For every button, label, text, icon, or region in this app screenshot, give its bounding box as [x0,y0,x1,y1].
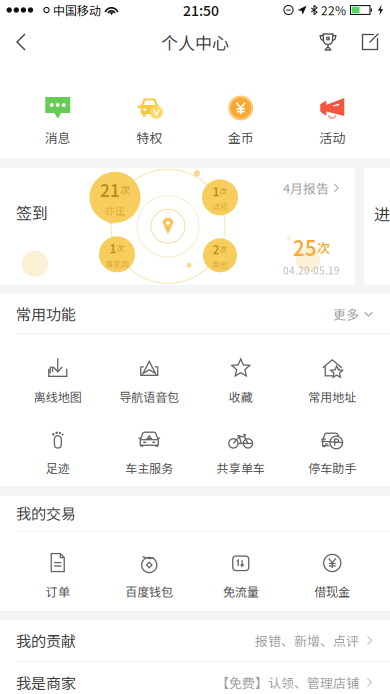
button[interactable]: 车主服务 [103,425,195,479]
staticText: 特权 [136,128,162,147]
staticText: 我的贡献 [16,630,76,651]
staticText: 21 [100,177,120,202]
staticText: 更多 [333,304,359,323]
staticText: 21:50 [183,0,219,20]
button[interactable]: 返回 [0,20,44,64]
button[interactable]: 足迹 [12,425,103,479]
staticText: 其他 [212,259,228,270]
button[interactable]: 更多 [333,296,374,331]
staticText: 04.20-05.19 [283,263,340,277]
staticText: 共享单车 [217,459,265,477]
staticText: 停车助手 [308,459,356,477]
staticText: 百度钱包 [125,583,173,600]
button[interactable]: 我是商家 [0,662,390,694]
button[interactable]: 常用地址 [286,354,378,407]
button[interactable]: 编辑 [350,20,390,64]
staticText: 借现金 [314,583,350,600]
staticText: 活动 [319,128,345,147]
staticText: 常用地址 [308,388,356,405]
button[interactable]: 消息 [12,95,103,147]
staticText: 足迹 [46,459,70,477]
staticText: 次 [219,243,227,255]
staticText: 我是商家 [16,672,76,693]
staticText: 订单 [46,583,70,600]
staticText: 签到 [16,201,48,224]
staticText: 个人中心 [161,30,229,54]
staticText: 1 [109,239,116,257]
staticText: 消息 [45,128,71,147]
staticText: 车主服务 [125,459,173,477]
staticText: 次 [219,185,227,197]
staticText: 25 [293,233,317,262]
staticText: 导航语音包 [119,388,179,405]
staticText: 1 [212,182,219,200]
staticText: 我的交易 [16,502,76,524]
button[interactable]: 我的贡献 [0,620,390,661]
staticText: 报错、新增、点评 [255,631,359,650]
staticText: 洋桥 [212,201,228,212]
staticText: 潘家园 [105,258,129,269]
button[interactable]: 共享单车 [195,425,286,479]
button[interactable]: 停车助手 [286,425,378,479]
button[interactable]: 金币 [195,95,286,147]
button[interactable]: 免流量 [195,549,286,602]
staticText: 4月报告 [283,178,329,197]
staticText: 【免费】认领、管理店铺 [216,673,359,692]
button[interactable]: 特权 [103,95,195,147]
button[interactable]: 借现金 [286,549,378,602]
staticText: 中国移动 [53,1,101,19]
button[interactable]: 导航语音包 [103,354,195,407]
button[interactable]: 荣誉 [306,20,350,64]
button[interactable]: 离线地图 [12,354,103,407]
button[interactable]: 签到 [0,168,390,285]
button[interactable]: 订单 [12,549,103,602]
staticText: 常用功能 [16,303,76,325]
button[interactable]: 活动 [286,95,378,147]
staticText: 收藏 [229,388,253,405]
staticText: 金币 [228,128,254,147]
staticText: 次 [317,238,330,257]
staticText: 次 [120,182,130,197]
button[interactable]: 收藏 [195,354,286,407]
staticText: 进 [374,202,390,225]
button[interactable]: 百度钱包 [103,549,195,602]
staticText: 离线地图 [34,388,82,405]
staticText: 22% [321,1,346,19]
staticText: 次 [116,242,124,254]
staticText: 免流量 [223,583,259,600]
staticText: 2 [212,240,219,258]
staticText: 亦庄 [105,203,125,217]
